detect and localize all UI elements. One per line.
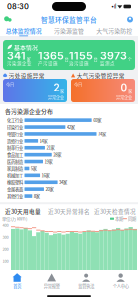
staticText: 今日 (6, 81, 14, 88)
staticText: 341 (7, 49, 26, 62)
staticText: 大气污染管控异常 (77, 71, 125, 79)
staticText: 智慧环保监管平台 (41, 15, 97, 24)
staticText: 食品加工 (7, 152, 23, 158)
staticText: 家 (26, 56, 30, 62)
button[interactable]: 近30天异常排名 (46, 206, 92, 216)
staticText: 机械加工 (7, 172, 23, 178)
staticText: 69家 (93, 117, 101, 123)
staticText: 印染行业 (7, 124, 23, 130)
staticText: 14家 (40, 138, 48, 144)
staticText: 28家 (53, 152, 61, 158)
staticText: 1155 (69, 49, 93, 62)
staticText: 单位:(万 kWh) (2, 216, 27, 222)
staticText: 大气污染防控 (96, 26, 132, 35)
staticText: 5家 (31, 165, 37, 172)
staticText: 16家 (42, 172, 50, 178)
button[interactable]: 总体监控情况 (1, 26, 46, 36)
staticText: 本期 (114, 216, 123, 222)
staticText: 造纸行业 (7, 138, 23, 144)
button[interactable]: 个人中心 (103, 270, 138, 292)
staticText: 治污设施 (69, 60, 89, 66)
staticText: 个 (127, 56, 131, 62)
staticText: 21家 (46, 145, 54, 151)
staticText: 医药制造 (7, 158, 23, 165)
staticText: 08:30 (7, 2, 29, 11)
button[interactable]: 污处设施异常 (3, 72, 67, 102)
button[interactable]: 近30天检查情况 (92, 206, 138, 216)
staticText: 其他行业 (7, 193, 23, 199)
staticText: 监管执法 (78, 283, 94, 289)
staticText: 个人中心 (113, 283, 129, 289)
staticText: 0 (121, 82, 128, 94)
staticText: 金属表面 (7, 186, 23, 192)
staticText: 首页 (13, 283, 21, 289)
button[interactable]: 污染源监管 (46, 26, 92, 36)
button[interactable]: 用户中心 (126, 15, 134, 23)
staticText: 34家 (59, 179, 67, 185)
staticText: 异常报警 (44, 283, 60, 289)
button[interactable]: 大气污染防控 (92, 26, 137, 36)
button[interactable]: 异常报警 (34, 270, 69, 292)
button[interactable]: 监管执法 (69, 270, 103, 292)
staticText: 化工行业 (7, 117, 23, 123)
staticText: 100 (2, 258, 8, 264)
button[interactable]: 首页 (0, 270, 34, 292)
staticText: 400 (2, 222, 8, 228)
staticText: 近30天用电量 (5, 207, 41, 215)
staticText: 橡胶塑料 (7, 179, 23, 185)
staticText: 300 (2, 234, 8, 240)
staticText: 产污设施 (38, 60, 58, 66)
staticText: •ıl (111, 3, 116, 10)
staticText: 19家 (44, 158, 52, 165)
staticText: 制革行业 (7, 145, 23, 151)
staticText: 3973 (100, 49, 127, 62)
staticText: 各污染源企业分布 (5, 107, 53, 115)
staticText: 家 (128, 88, 132, 94)
staticText: 监测点 (100, 60, 115, 66)
staticText: 污染源监管 (54, 26, 84, 35)
staticText: 近30天异常排名 (48, 207, 90, 215)
staticText: 1365 (38, 49, 64, 62)
staticText: 污处设施异常 (9, 71, 45, 79)
staticText: 8家 (34, 193, 40, 199)
button[interactable]: 近30天用电量 (0, 206, 46, 216)
staticText: 异常企业 (48, 94, 64, 100)
staticText: 家 (60, 88, 64, 94)
staticText: 台 (64, 56, 68, 62)
staticText: 异常企业 (116, 94, 132, 100)
staticText: 同期 (127, 216, 136, 222)
staticText: 42家 (67, 124, 75, 130)
staticText: 总体监控情况 (6, 26, 42, 35)
staticText: 家具制造 (7, 165, 23, 172)
button[interactable]: 大气污染管控异常 (71, 72, 135, 102)
staticText: 200 (2, 246, 8, 252)
staticText: 基本情况 (14, 43, 38, 51)
staticText: 台 (93, 56, 97, 62)
button[interactable]: 应用图标 (4, 15, 12, 23)
staticText: 今日 (74, 81, 82, 88)
staticText: 近30天检查情况 (94, 207, 136, 215)
staticText: 2 (54, 82, 60, 94)
staticText: 电镀行业 (7, 131, 23, 137)
staticText: 74家 (98, 131, 106, 137)
staticText: 20家 (45, 186, 53, 192)
staticText: 污染源企业 (7, 60, 32, 66)
